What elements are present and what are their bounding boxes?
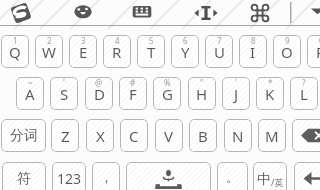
button[interactable]: X — [86, 119, 114, 152]
button[interactable]: ' — [50, 77, 78, 110]
staticText: 6 — [183, 35, 188, 46]
button[interactable]: @ — [85, 77, 113, 110]
staticText: X — [96, 126, 105, 146]
button[interactable]: Move cursor — [194, 1, 218, 25]
button[interactable]: V — [155, 119, 183, 152]
staticText: T — [147, 42, 156, 62]
staticText: I — [250, 42, 256, 62]
staticText: O — [281, 42, 293, 62]
button[interactable]: 2 — [35, 35, 63, 68]
staticText: N — [232, 126, 244, 146]
staticText: C — [129, 126, 139, 146]
staticText: @ — [95, 77, 103, 88]
staticText: P — [316, 42, 320, 62]
staticText: " — [200, 77, 204, 88]
staticText: 分词 — [10, 127, 38, 145]
button[interactable]: N — [224, 119, 252, 152]
staticText: Q — [9, 42, 21, 62]
staticText: 符 — [17, 170, 31, 188]
staticText: 3 — [81, 35, 86, 46]
staticText: M — [265, 126, 279, 146]
staticText: J — [234, 84, 239, 104]
staticText: # — [130, 77, 136, 88]
button[interactable]: 9 — [273, 35, 301, 68]
button[interactable]: 5 — [137, 35, 165, 68]
staticText: 123 — [57, 169, 82, 188]
button[interactable]: M — [258, 119, 286, 152]
staticText: 5 — [149, 35, 154, 46]
staticText: 8 — [251, 35, 256, 46]
button[interactable]: Keyboard layout — [130, 1, 154, 25]
button[interactable]: # — [119, 77, 147, 110]
staticText: F — [129, 84, 137, 104]
staticText: R — [112, 42, 122, 62]
button[interactable]: % — [153, 77, 181, 110]
staticText: L — [300, 84, 308, 104]
button[interactable]: 分词 — [1, 119, 46, 152]
button[interactable]: Sogou input method — [9, 1, 33, 25]
staticText: 0 — [319, 35, 320, 46]
button[interactable]: B — [189, 119, 217, 152]
staticText: W — [42, 42, 56, 62]
button[interactable]: Backspace — [292, 119, 320, 152]
staticText: A — [25, 84, 35, 104]
staticText: ' — [63, 77, 65, 88]
staticText: * — [268, 77, 273, 88]
button[interactable]: Emoji — [71, 1, 95, 25]
button[interactable]: " — [188, 77, 216, 110]
button[interactable]: Enter — [294, 162, 320, 190]
button[interactable]: 中 — [253, 162, 287, 190]
staticText: 中 — [257, 171, 271, 189]
staticText: B — [198, 126, 208, 146]
button[interactable]: Z — [51, 119, 79, 152]
staticText: % — [164, 77, 171, 88]
staticText: S — [60, 84, 69, 104]
button[interactable]: * — [256, 77, 284, 110]
staticText: Z — [61, 126, 70, 146]
staticText: H — [196, 84, 208, 104]
button[interactable]: 3 — [69, 35, 97, 68]
staticText: E — [79, 42, 88, 62]
button[interactable]: More functions — [248, 1, 272, 25]
staticText: 2 — [47, 35, 52, 46]
staticText: D — [94, 84, 105, 104]
staticText: U — [214, 42, 225, 62]
staticText: 1 — [13, 35, 18, 46]
button[interactable]: ' — [222, 77, 250, 110]
button[interactable]: 123 — [52, 162, 86, 190]
button[interactable]: 8 — [239, 35, 267, 68]
button[interactable]: ， — [92, 162, 120, 190]
staticText: 7 — [217, 35, 222, 46]
button[interactable]: 6 — [171, 35, 199, 68]
button[interactable]: ? — [290, 77, 318, 110]
staticText: ~ — [28, 77, 33, 88]
button[interactable]: 0 — [307, 35, 320, 68]
button[interactable]: 符 — [2, 162, 46, 190]
staticText: ， — [100, 169, 113, 185]
staticText: V — [164, 126, 174, 146]
staticText: 9 — [285, 35, 290, 46]
button[interactable]: 7 — [205, 35, 233, 68]
staticText: ' — [235, 77, 237, 88]
staticText: Y — [181, 42, 190, 62]
button[interactable]: 。 — [217, 162, 248, 190]
staticText: /英 — [271, 176, 284, 188]
button[interactable]: ~ — [16, 77, 44, 110]
button[interactable]: 1 — [1, 35, 29, 68]
staticText: ? — [302, 77, 306, 88]
staticText: G — [162, 84, 173, 104]
button[interactable]: Space, voice input — [126, 162, 211, 190]
staticText: K — [265, 84, 275, 104]
staticText: 。 — [226, 169, 239, 185]
button[interactable]: 4 — [103, 35, 131, 68]
button[interactable]: Hide keyboard — [300, 1, 320, 25]
staticText: 4 — [115, 35, 120, 46]
button[interactable]: C — [120, 119, 148, 152]
